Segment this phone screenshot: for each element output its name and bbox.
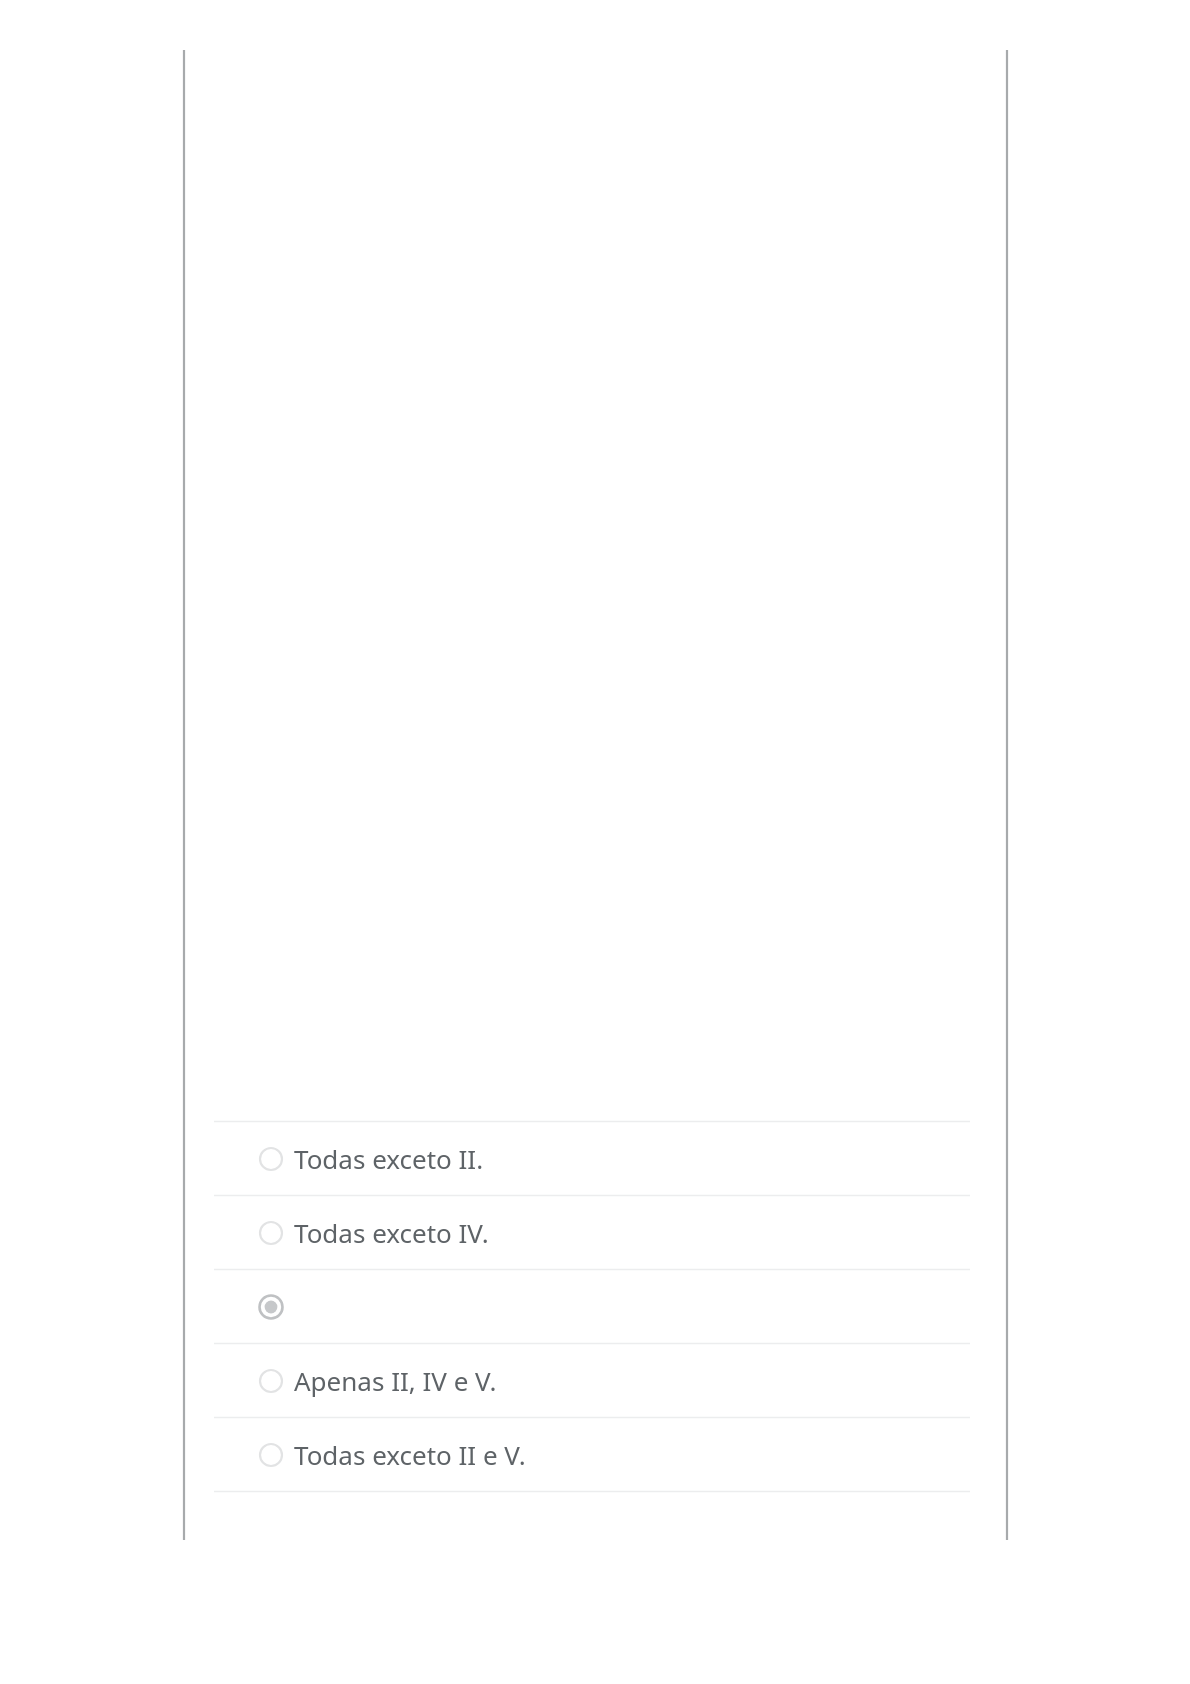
other: Apenas II, IV e V. [258,1368,284,1394]
button[interactable]: Option [0,1270,1190,1343]
staticText: Todas exceto IV. [294,1215,489,1250]
staticText: Todas exceto II e V. [294,1437,526,1472]
other: Option [258,1294,284,1320]
staticText: Apenas II, IV e V. [294,1363,497,1398]
other: Todas exceto II. [258,1146,284,1172]
button[interactable]: Todas exceto II. [0,1122,1190,1195]
other: Todas exceto II e V. [258,1442,284,1468]
staticText: Todas exceto II. [294,1141,484,1176]
other: Todas exceto IV. [258,1220,284,1246]
button[interactable]: Todas exceto II e V. [0,1418,1190,1491]
button[interactable]: Apenas II, IV e V. [0,1344,1190,1417]
button[interactable]: Todas exceto IV. [0,1196,1190,1269]
